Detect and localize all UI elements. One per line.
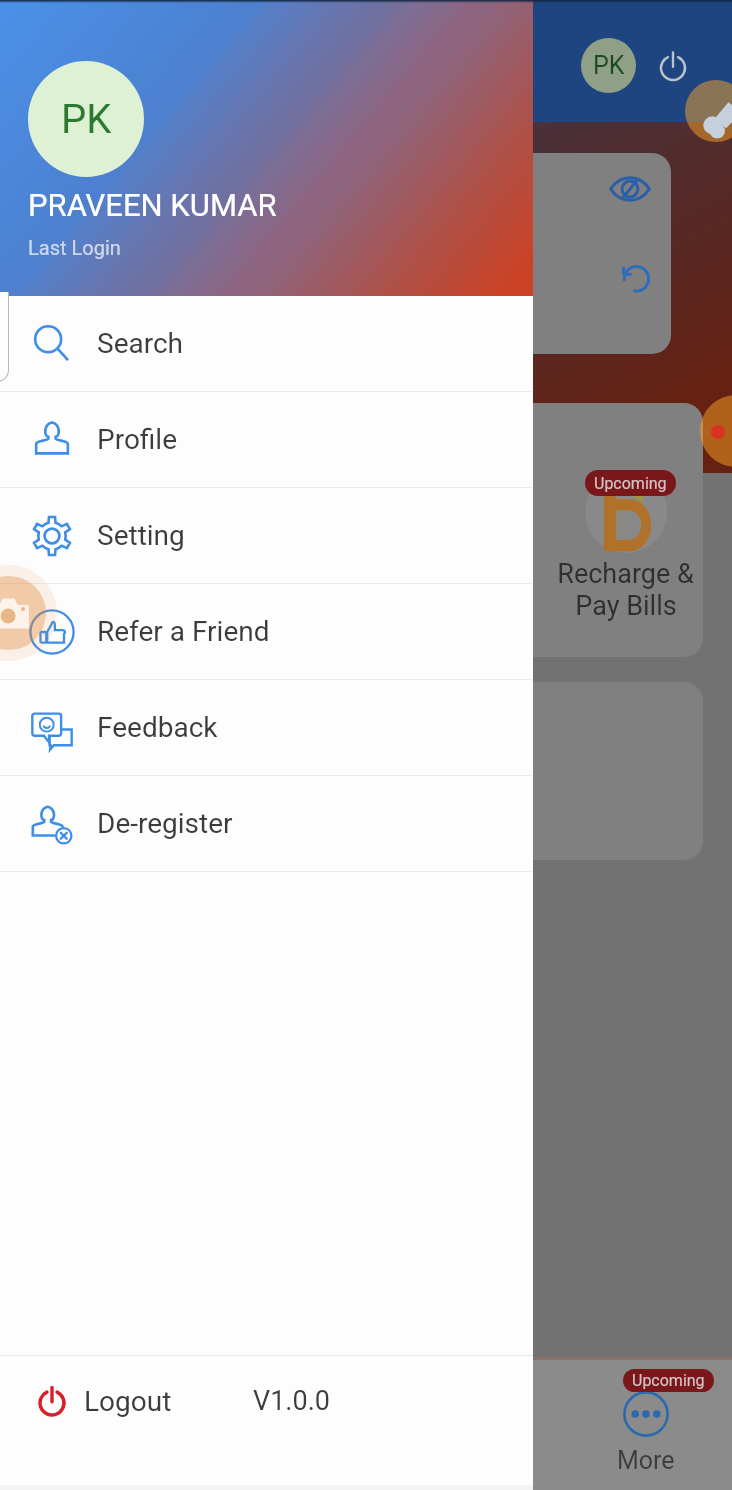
button[interactable]: Hide balance: [608, 167, 652, 211]
staticText: De-register: [97, 807, 233, 840]
staticText: Search: [97, 327, 184, 360]
staticText: Last Login: [28, 236, 121, 259]
button[interactable]: Setting: [0, 488, 533, 583]
button[interactable]: Notifications: [700, 395, 732, 467]
staticText: PK: [593, 51, 625, 80]
staticText: Logout: [84, 1385, 172, 1418]
staticText: PRAVEEN KUMAR: [28, 187, 277, 223]
staticText: Upcoming: [594, 474, 667, 493]
staticText: Pay Bills: [575, 590, 677, 622]
staticText: Setting: [97, 519, 185, 552]
button[interactable]: Logout: [0, 1356, 533, 1446]
button[interactable]: More: [623, 1391, 669, 1437]
button[interactable]: Hide balance: [40, 153, 671, 354]
staticText: Recharge &: [557, 558, 694, 590]
button[interactable]: PK: [581, 38, 636, 93]
staticText: Upcoming: [632, 1371, 705, 1390]
button[interactable]: Profile: [0, 392, 533, 487]
button[interactable]: De-register: [0, 776, 533, 871]
staticText: V1.0.0: [253, 1385, 330, 1417]
button[interactable]: Theme: [685, 80, 732, 142]
button[interactable]: Refer a Friend: [0, 584, 533, 679]
button[interactable]: Logout: [653, 46, 693, 86]
staticText: XXXXXXXXXXXX: [64, 253, 290, 288]
button[interactable]: Feedback: [0, 680, 533, 775]
button[interactable]: Search: [0, 296, 533, 391]
staticText: PK: [61, 96, 112, 143]
staticText: Refer a Friend: [97, 615, 270, 648]
button[interactable]: Refresh: [617, 258, 653, 294]
button[interactable]: Recharge &: [548, 471, 703, 622]
staticText: Profile: [97, 423, 178, 456]
staticText: Feedback: [97, 711, 218, 744]
staticText: Available Balance: [64, 290, 276, 322]
staticText: More: [617, 1446, 675, 1475]
